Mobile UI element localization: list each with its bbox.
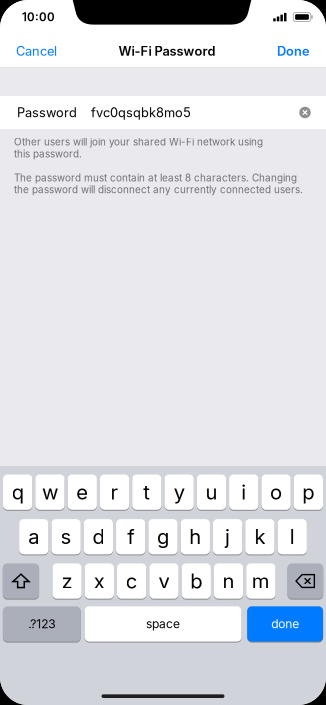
staticText: f	[127, 524, 134, 549]
button[interactable]: n	[214, 563, 243, 599]
staticText: i	[241, 480, 246, 504]
button[interactable]: Delete	[287, 563, 323, 599]
button[interactable]: e	[68, 474, 97, 510]
button[interactable]: c	[117, 563, 146, 599]
staticText: o	[270, 480, 282, 504]
staticText: space	[146, 617, 180, 631]
staticText: q	[12, 480, 24, 504]
button[interactable]: Shift	[3, 563, 39, 599]
button[interactable]: done	[247, 606, 323, 642]
staticText: d	[92, 524, 104, 549]
staticText: Done	[277, 43, 310, 59]
button[interactable]: z	[52, 563, 82, 599]
button[interactable]: h	[181, 519, 210, 555]
staticText: b	[190, 569, 202, 593]
staticText: e	[76, 480, 88, 504]
staticText: c	[126, 569, 138, 593]
staticText: s	[61, 524, 72, 549]
staticText: j	[225, 524, 230, 549]
staticText: Other users will join your shared Wi-Fi …	[14, 136, 263, 160]
button[interactable]: g	[148, 519, 178, 555]
staticText: .?123	[28, 617, 55, 631]
staticText: done	[271, 617, 299, 631]
button[interactable]: v	[149, 563, 179, 599]
staticText: w	[42, 480, 58, 504]
button[interactable]: d	[84, 519, 113, 555]
button[interactable]: y	[164, 474, 194, 510]
staticText: a	[28, 524, 39, 549]
button[interactable]: f	[116, 519, 145, 555]
staticText: fvc0qsqbk8mo5	[91, 105, 191, 120]
button[interactable]: w	[35, 474, 65, 510]
button[interactable]: u	[197, 474, 226, 510]
staticText: u	[205, 480, 217, 504]
staticText: Cancel	[16, 43, 57, 59]
staticText: g	[157, 524, 169, 549]
button[interactable]: m	[246, 563, 275, 599]
staticText: Wi-Fi Password	[118, 43, 215, 59]
button[interactable]: o	[261, 474, 291, 510]
staticText: p	[302, 480, 314, 504]
button[interactable]: k	[245, 519, 274, 555]
staticText: Password	[17, 105, 77, 120]
button[interactable]: l	[278, 519, 307, 555]
button[interactable]: .?123	[3, 606, 81, 642]
button[interactable]: q	[3, 474, 32, 510]
staticText: x	[94, 569, 105, 593]
staticText: z	[61, 569, 72, 593]
button[interactable]: s	[51, 519, 81, 555]
staticText: k	[254, 524, 265, 549]
staticText: t	[143, 480, 150, 504]
button[interactable]: t	[132, 474, 161, 510]
staticText: r	[110, 480, 118, 504]
staticText: l	[290, 524, 295, 549]
button[interactable]: space	[85, 606, 241, 642]
staticText: v	[158, 569, 169, 593]
staticText: n	[222, 569, 234, 593]
button[interactable]: i	[229, 474, 258, 510]
button[interactable]: Done	[261, 34, 326, 68]
button[interactable]: j	[213, 519, 242, 555]
staticText: m	[252, 569, 270, 593]
button[interactable]: r	[100, 474, 129, 510]
staticText: The password must contain at least 8 cha…	[14, 172, 303, 196]
button[interactable]: p	[294, 474, 323, 510]
button[interactable]: x	[85, 563, 114, 599]
button[interactable]: b	[182, 563, 211, 599]
staticText: 10:00	[22, 10, 55, 24]
staticText: h	[189, 524, 201, 549]
button[interactable]: Cancel	[0, 34, 73, 68]
button[interactable]: Clear text	[290, 96, 320, 129]
button[interactable]: a	[19, 519, 48, 555]
staticText: y	[174, 480, 185, 504]
